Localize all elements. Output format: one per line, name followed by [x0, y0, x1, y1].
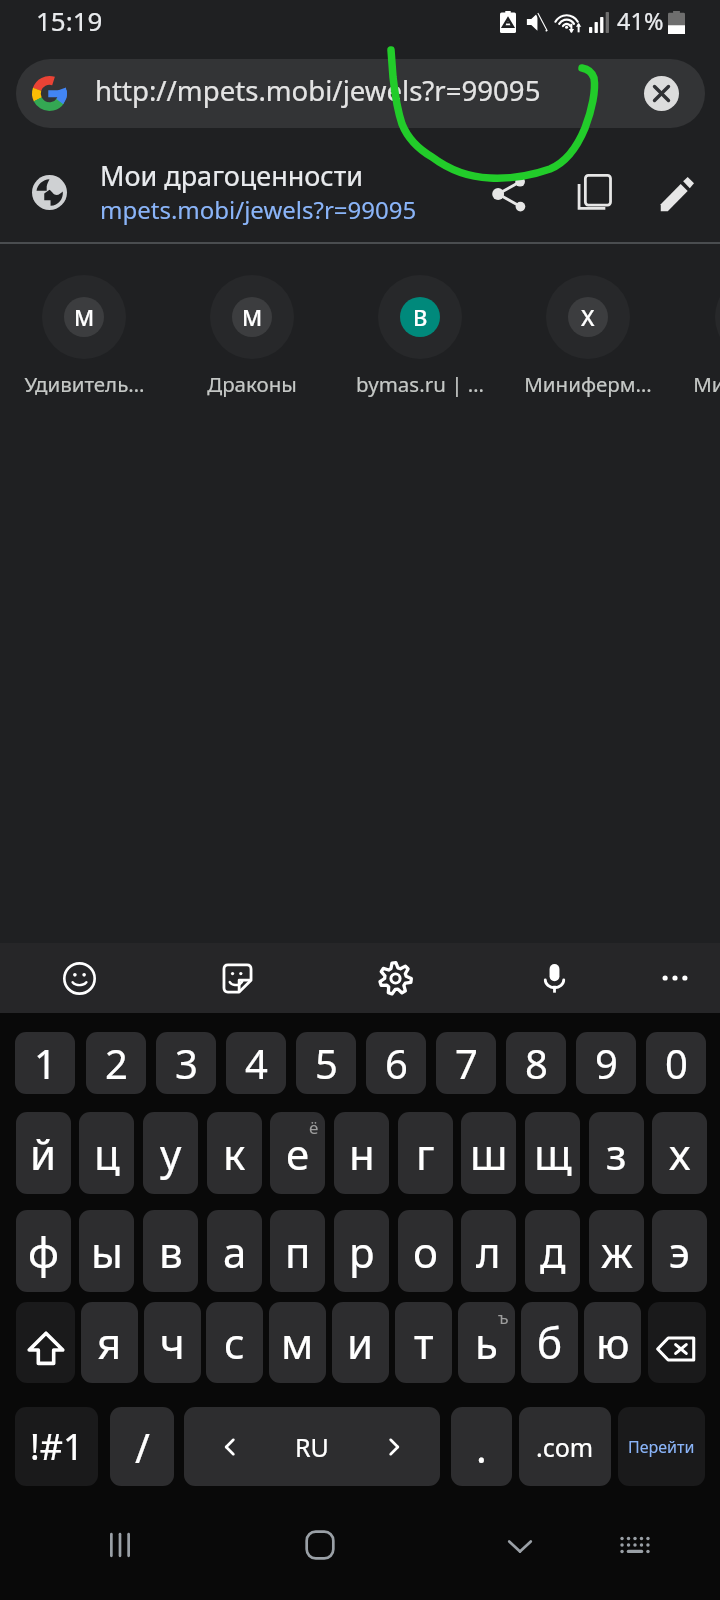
staticText: 6 — [385, 1036, 408, 1090]
staticText: Миниферм… — [524, 370, 652, 398]
staticText: .com — [536, 1430, 594, 1464]
staticText: 3 — [175, 1036, 198, 1090]
button[interactable]: Voice input — [526, 950, 582, 1006]
staticText: г — [416, 1125, 435, 1182]
button[interactable]: н — [334, 1112, 389, 1194]
button[interactable]: с — [206, 1302, 263, 1383]
button[interactable]: 3 — [156, 1032, 216, 1094]
button[interactable]: ы — [79, 1210, 134, 1292]
staticText: з — [606, 1125, 627, 1182]
button[interactable]: М — [168, 275, 336, 398]
button[interactable]: л — [461, 1210, 516, 1292]
button[interactable]: т — [395, 1302, 452, 1383]
button[interactable]: / — [110, 1407, 174, 1486]
button[interactable]: 4 — [226, 1032, 286, 1094]
staticText: м — [281, 1314, 314, 1371]
button[interactable]: о — [398, 1210, 453, 1292]
button[interactable]: Emoji — [51, 950, 107, 1006]
button[interactable]: я — [81, 1302, 138, 1383]
staticText: X — [581, 302, 595, 332]
staticText: л — [476, 1223, 501, 1280]
button[interactable]: з — [589, 1112, 644, 1194]
button[interactable]: 2 — [86, 1032, 146, 1094]
button[interactable]: 1 — [15, 1032, 75, 1094]
button[interactable]: ц — [79, 1112, 134, 1194]
button[interactable]: 7 — [436, 1032, 496, 1094]
staticText: 0 — [665, 1036, 688, 1090]
button[interactable]: 8 — [506, 1032, 566, 1094]
button[interactable]: х — [652, 1112, 707, 1194]
button[interactable]: э — [652, 1210, 707, 1292]
button[interactable]: Settings — [367, 950, 423, 1006]
button[interactable]: и — [332, 1302, 389, 1383]
button[interactable]: п — [270, 1210, 325, 1292]
button[interactable]: Share — [482, 166, 538, 222]
button[interactable]: Hide keyboard — [480, 1505, 560, 1585]
button[interactable]: Home — [280, 1505, 360, 1585]
button[interactable]: Clear — [638, 70, 685, 117]
staticText: ч — [160, 1314, 185, 1371]
button[interactable]: а — [207, 1210, 262, 1292]
button[interactable]: Switch keyboard — [595, 1505, 675, 1585]
staticText: щ — [534, 1125, 572, 1182]
button[interactable]: . — [451, 1407, 512, 1486]
button[interactable]: Мои драгоценности — [0, 147, 720, 242]
button[interactable]: г — [398, 1112, 453, 1194]
button[interactable]: !#1 — [15, 1407, 98, 1486]
button[interactable]: X — [504, 275, 672, 398]
button[interactable]: 9 — [576, 1032, 636, 1094]
staticText: 7 — [455, 1036, 478, 1090]
button[interactable]: Edit — [648, 166, 704, 222]
button[interactable]: More options — [647, 950, 703, 1006]
staticText: 1 — [34, 1036, 57, 1090]
button[interactable]: р — [334, 1210, 389, 1292]
button[interactable]: щ — [525, 1112, 580, 1194]
button[interactable]: д — [525, 1210, 580, 1292]
button[interactable]: .com — [519, 1407, 611, 1486]
staticText: т — [414, 1314, 434, 1371]
button[interactable]: ж — [589, 1210, 644, 1292]
button[interactable]: Stickers — [209, 950, 265, 1006]
staticText: Мои драгоценности — [100, 157, 363, 194]
button[interactable]: ю — [584, 1302, 641, 1383]
button[interactable]: ш — [461, 1112, 516, 1194]
button[interactable]: б — [521, 1302, 578, 1383]
button[interactable]: Backspace — [648, 1302, 706, 1383]
button[interactable]: Recents — [80, 1505, 160, 1585]
staticText: в — [159, 1223, 183, 1280]
staticText: http://mpets.mobi/jewels?r=99095 — [95, 71, 541, 109]
button[interactable]: B — [336, 275, 504, 398]
button[interactable]: http://mpets.mobi/jewels?r=99095 — [16, 59, 705, 128]
staticText: 4 — [245, 1036, 268, 1090]
staticText: й — [30, 1125, 57, 1182]
staticText: 2 — [105, 1036, 128, 1090]
staticText: п — [285, 1223, 311, 1280]
button[interactable]: 6 — [366, 1032, 426, 1094]
button[interactable]: Перейти — [618, 1407, 705, 1486]
button[interactable]: 0 — [646, 1032, 706, 1094]
button[interactable]: ь — [458, 1302, 515, 1383]
staticText: б — [537, 1314, 563, 1371]
staticText: mpets.mobi/jewels?r=99095 — [100, 193, 417, 226]
button[interactable]: у — [143, 1112, 198, 1194]
button[interactable]: М — [673, 275, 720, 398]
button[interactable]: к — [207, 1112, 262, 1194]
staticText: Драконы — [207, 370, 297, 398]
staticText: М — [74, 302, 95, 332]
button[interactable]: 5 — [296, 1032, 356, 1094]
staticText: RU — [295, 1430, 329, 1464]
button[interactable]: ч — [144, 1302, 201, 1383]
staticText: 41% — [617, 5, 664, 37]
button[interactable]: м — [269, 1302, 326, 1383]
staticText: у — [160, 1125, 182, 1182]
staticText: е — [286, 1125, 310, 1182]
button[interactable]: Shift — [16, 1302, 75, 1383]
button[interactable]: Copy — [565, 164, 621, 220]
button[interactable]: RU — [184, 1407, 440, 1486]
staticText: . — [476, 1420, 487, 1474]
button[interactable]: й — [16, 1112, 71, 1194]
button[interactable]: М — [0, 275, 168, 398]
button[interactable]: ф — [16, 1210, 71, 1292]
button[interactable]: в — [143, 1210, 198, 1292]
button[interactable]: е — [270, 1112, 325, 1194]
